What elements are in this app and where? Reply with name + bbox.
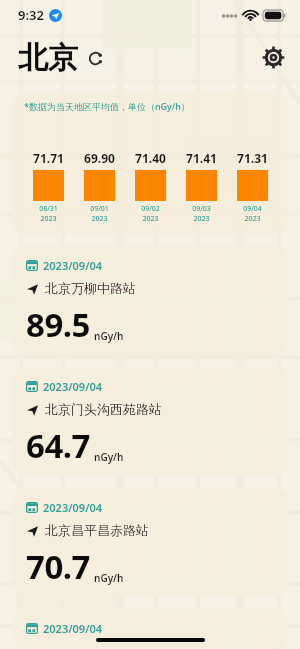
button[interactable]: 2023/09/04 xyxy=(12,246,288,355)
staticText: 2023/09/04 xyxy=(43,258,103,273)
staticText: 09/01 xyxy=(90,204,109,214)
button[interactable]: 2023/09/04 xyxy=(12,609,288,649)
staticText: 64.7 xyxy=(26,423,90,468)
staticText: 2023/09/04 xyxy=(43,379,103,394)
staticText: 09/04 xyxy=(243,204,262,214)
staticText: 北京 xyxy=(18,39,78,77)
staticText: 9:32 xyxy=(18,6,44,24)
staticText: 09/02 xyxy=(141,204,160,214)
staticText: 北京万柳中路站 xyxy=(45,280,136,296)
staticText: nGy/h xyxy=(94,329,124,343)
staticText: 北京昌平昌赤路站 xyxy=(45,522,149,538)
button[interactable]: *数据为当天地区平均值，单位（nGy/h） xyxy=(12,91,288,234)
staticText: 89.5 xyxy=(26,302,90,347)
staticText: 2023 xyxy=(40,214,57,224)
staticText: 2023/09/04 xyxy=(43,500,103,515)
staticText: nGy/h xyxy=(94,450,124,464)
staticText: *数据为当天地区平均值，单位（nGy/h） xyxy=(24,100,190,112)
staticText: 71.40 xyxy=(135,150,166,166)
staticText: 2023 xyxy=(91,214,108,224)
staticText: 2023 xyxy=(244,214,261,224)
staticText: 71.41 xyxy=(186,150,217,166)
staticText: nGy/h xyxy=(94,571,124,585)
staticText: 2023 xyxy=(142,214,159,224)
staticText: 71.31 xyxy=(237,150,268,166)
staticText: 2023 xyxy=(193,214,210,224)
staticText: 2023/09/04 xyxy=(43,621,103,636)
staticText: 09/03 xyxy=(192,204,211,214)
staticText: 69.90 xyxy=(84,150,115,166)
staticText: 北京门头沟西苑路站 xyxy=(45,401,162,417)
button[interactable]: 2023/09/04 xyxy=(12,367,288,476)
button[interactable]: 2023/09/04 xyxy=(12,488,288,597)
staticText: 71.71 xyxy=(33,150,64,166)
staticText: 08/31 xyxy=(39,204,58,214)
staticText: 70.7 xyxy=(26,544,90,589)
button[interactable]: Settings xyxy=(259,43,288,72)
button[interactable]: Refresh xyxy=(85,48,106,69)
